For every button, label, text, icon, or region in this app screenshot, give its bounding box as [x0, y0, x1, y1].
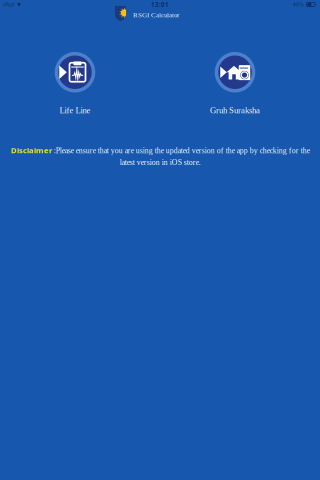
staticText: Gruh Suraksha — [210, 105, 260, 115]
staticText: 49% — [292, 1, 303, 8]
staticText: RSGI Calculator — [133, 11, 179, 19]
button[interactable]: Life Line — [15, 52, 135, 115]
staticText: iPad — [3, 1, 14, 8]
staticText: 13:01 — [151, 0, 169, 9]
staticText: Life Line — [59, 105, 90, 115]
button[interactable]: Gruh Suraksha — [175, 52, 295, 115]
staticText: Disclaimer :Please ensure that you are u… — [10, 145, 309, 167]
